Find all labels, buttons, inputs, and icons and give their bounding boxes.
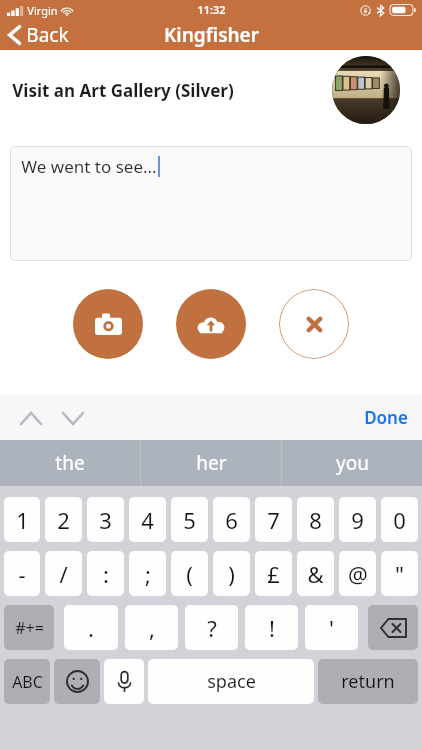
staticText: 6 xyxy=(225,505,238,535)
staticText: 7 xyxy=(267,505,280,535)
button[interactable]: #+= xyxy=(4,605,54,650)
staticText: return xyxy=(341,669,395,694)
button[interactable]: 3 xyxy=(87,497,124,542)
staticText: @ xyxy=(348,559,368,589)
button[interactable]: @ xyxy=(339,551,376,596)
button[interactable]: her xyxy=(141,440,281,486)
staticText: : xyxy=(103,559,109,589)
button[interactable]: / xyxy=(45,551,82,596)
button[interactable]: Next field xyxy=(56,401,90,435)
button[interactable]: return xyxy=(318,659,418,704)
button[interactable]: Previous field xyxy=(14,401,48,435)
staticText: space xyxy=(207,669,256,694)
staticText: / xyxy=(59,559,68,589)
staticText: " xyxy=(395,559,404,589)
button[interactable]: ' xyxy=(305,605,358,650)
staticText: 2 xyxy=(57,505,70,535)
button[interactable]: 1 xyxy=(4,497,40,542)
staticText: her xyxy=(196,450,227,476)
staticText: Visit an Art Gallery (Silver) xyxy=(12,79,234,102)
staticText: #+= xyxy=(15,617,44,639)
staticText: Kingfisher xyxy=(164,22,259,48)
staticText: 1 xyxy=(16,505,29,535)
button[interactable]: Back xyxy=(0,20,79,50)
staticText: - xyxy=(18,559,26,589)
staticText: 9 xyxy=(351,505,364,535)
button[interactable]: - xyxy=(4,551,40,596)
button[interactable]: Upload xyxy=(176,289,246,359)
button[interactable]: £ xyxy=(255,551,292,596)
staticText: We went to see... xyxy=(21,155,157,178)
button[interactable]: Done xyxy=(350,400,422,435)
staticText: Virgin xyxy=(27,3,58,18)
staticText: ( xyxy=(186,559,193,589)
staticText: , xyxy=(149,613,155,643)
staticText: 4 xyxy=(141,505,154,535)
staticText: ABC xyxy=(12,671,43,693)
staticText: . xyxy=(88,613,94,643)
staticText: ; xyxy=(145,559,151,589)
staticText: 11:32 xyxy=(197,2,226,17)
button[interactable]: the xyxy=(0,440,140,486)
staticText: 0 xyxy=(393,505,406,535)
staticText: 3 xyxy=(99,505,112,535)
button[interactable]: 5 xyxy=(171,497,208,542)
staticText: ' xyxy=(329,613,334,643)
staticText: ) xyxy=(228,559,235,589)
staticText: 8 xyxy=(309,505,322,535)
button[interactable]: Activity photo xyxy=(332,56,400,124)
button[interactable]: Cancel xyxy=(279,289,349,359)
staticText: Back xyxy=(26,22,69,48)
staticText: the xyxy=(55,450,85,476)
staticText: £ xyxy=(267,559,280,589)
staticText: you xyxy=(336,450,369,476)
button[interactable]: ? xyxy=(185,605,238,650)
staticText: & xyxy=(307,559,324,589)
button[interactable]: 6 xyxy=(213,497,250,542)
button[interactable]: Dictation xyxy=(104,659,144,704)
button[interactable]: " xyxy=(381,551,418,596)
button[interactable]: ! xyxy=(245,605,298,650)
button[interactable]: 7 xyxy=(255,497,292,542)
staticText: ? xyxy=(207,613,217,643)
button[interactable]: , xyxy=(125,605,178,650)
button[interactable]: Backspace xyxy=(368,605,418,650)
staticText: ! xyxy=(269,613,275,643)
button[interactable]: 8 xyxy=(297,497,334,542)
button[interactable]: ; xyxy=(129,551,166,596)
button[interactable]: 0 xyxy=(381,497,418,542)
button[interactable]: . xyxy=(64,605,118,650)
button[interactable]: you xyxy=(282,440,422,486)
button[interactable]: Emoji xyxy=(54,659,100,704)
button[interactable]: ) xyxy=(213,551,250,596)
button[interactable]: & xyxy=(297,551,334,596)
button[interactable]: 9 xyxy=(339,497,376,542)
button[interactable]: ( xyxy=(171,551,208,596)
button[interactable]: 2 xyxy=(45,497,82,542)
staticText: Done xyxy=(364,406,408,429)
button[interactable]: : xyxy=(87,551,124,596)
button[interactable]: 4 xyxy=(129,497,166,542)
button[interactable]: We went to see... xyxy=(10,146,412,261)
staticText: 5 xyxy=(183,505,196,535)
button[interactable]: space xyxy=(148,659,314,704)
button[interactable]: ABC xyxy=(4,659,50,704)
button[interactable]: Take photo xyxy=(73,289,143,359)
